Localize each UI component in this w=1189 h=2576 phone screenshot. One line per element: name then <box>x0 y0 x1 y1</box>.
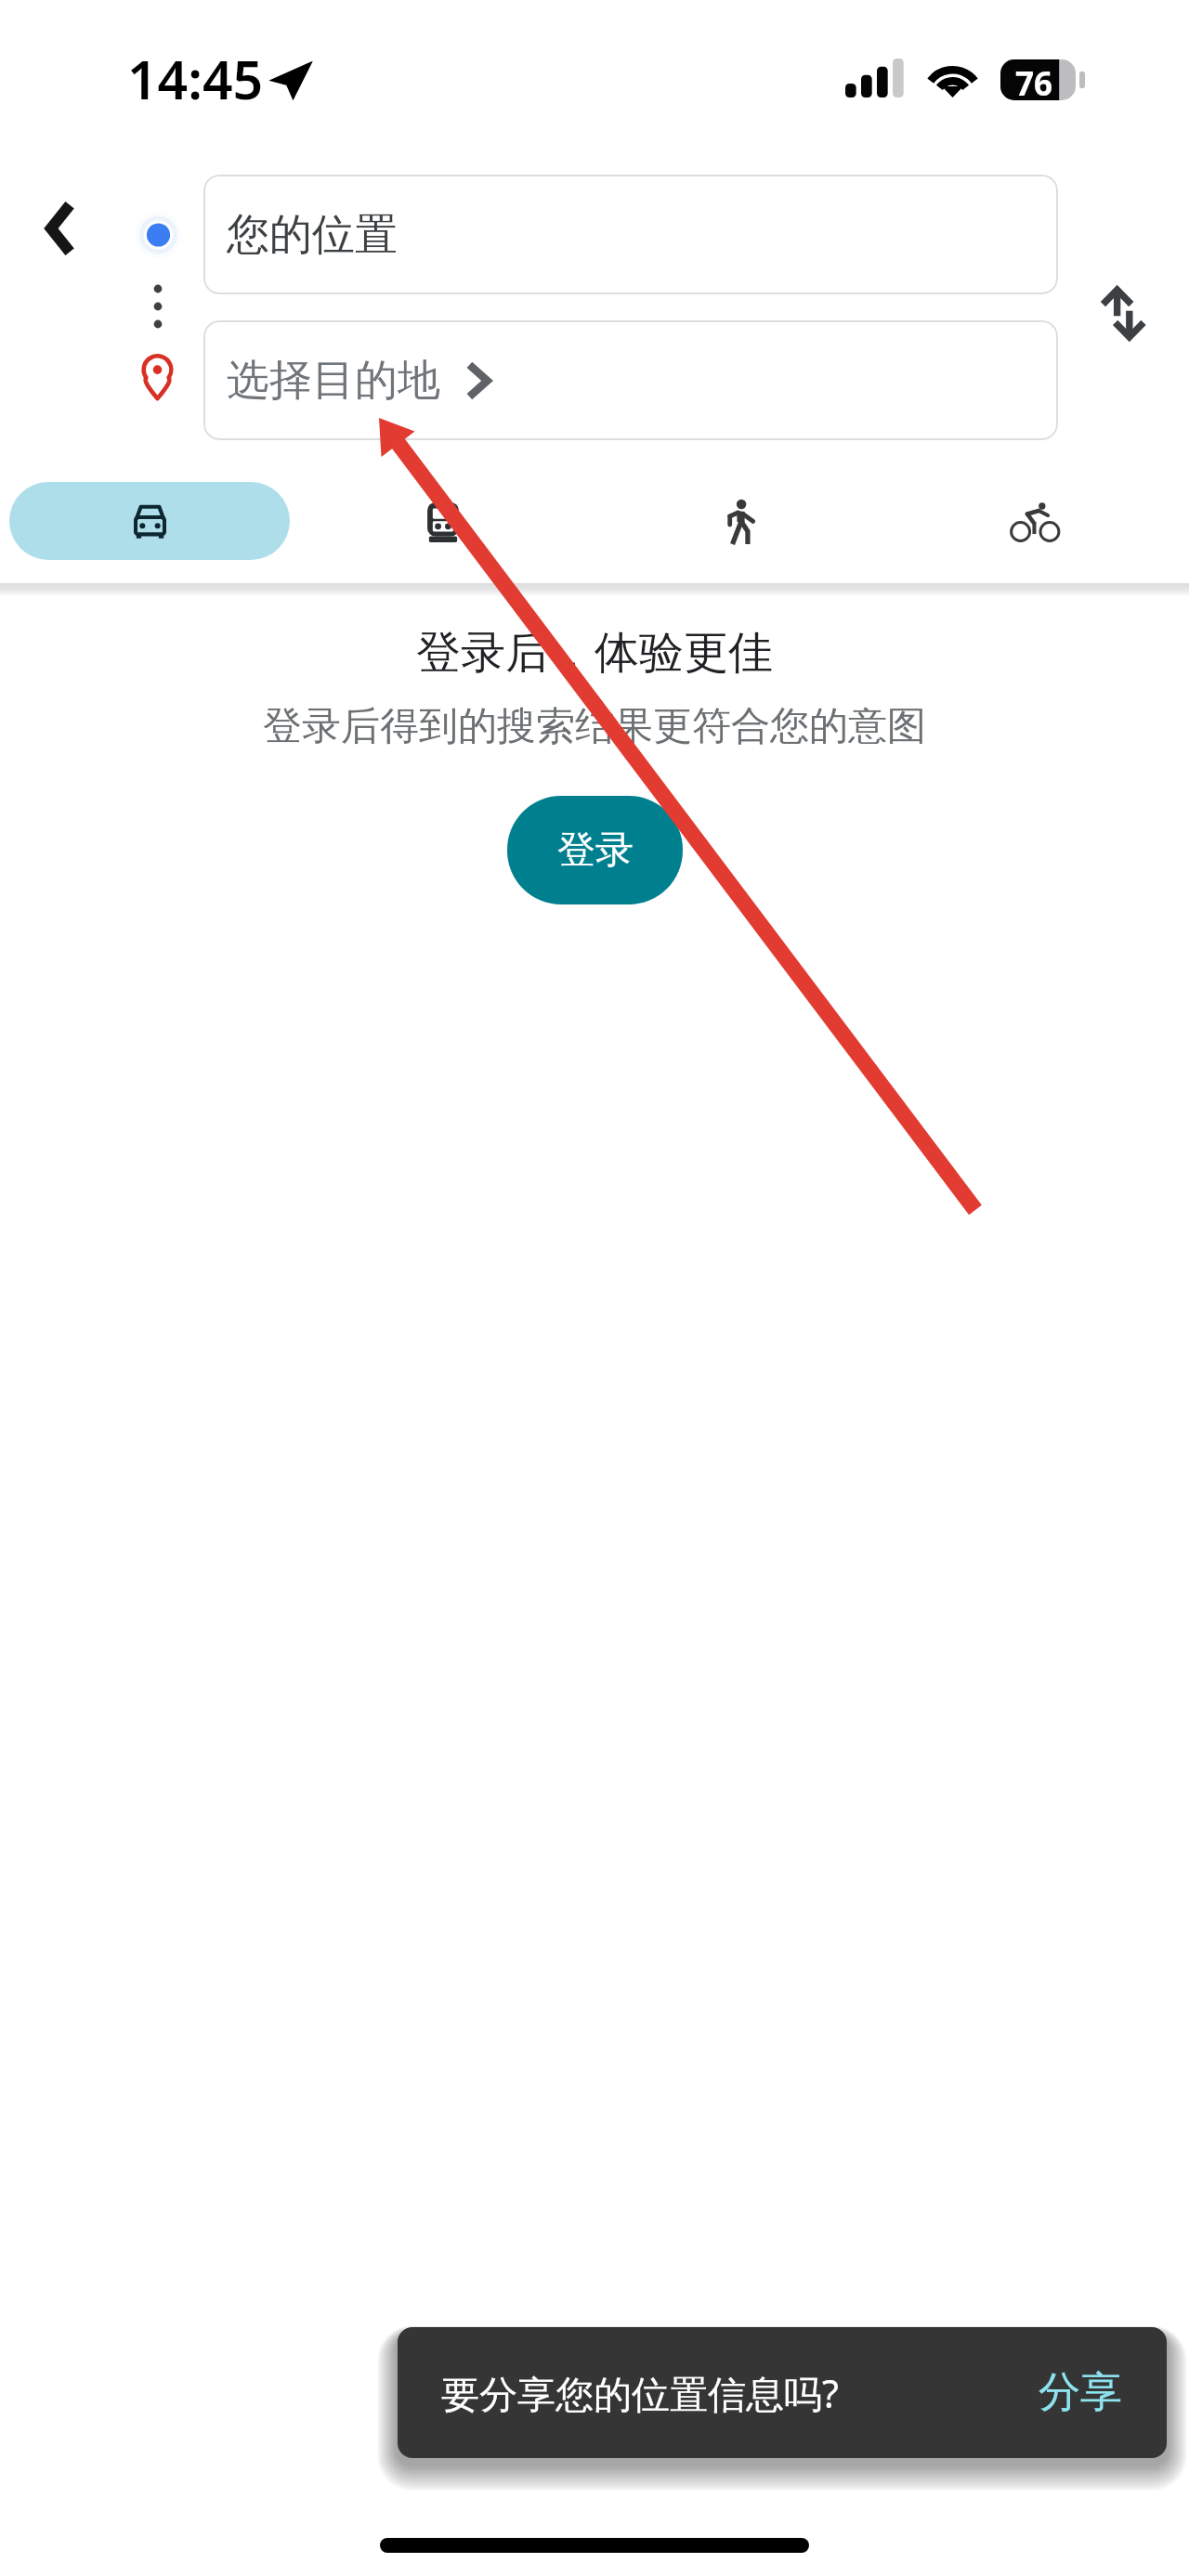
staticText: 您的位置 <box>227 208 398 262</box>
staticText: 分享 <box>1039 2366 1122 2419</box>
staticText: 要分享您的位置信息吗? <box>441 2367 839 2419</box>
button[interactable]: Back <box>14 184 103 273</box>
staticText: 登录 <box>557 826 634 875</box>
staticText: 登录后，体验更佳 <box>416 625 773 681</box>
button[interactable]: Swap start and destination <box>1078 267 1168 357</box>
button[interactable]: 要分享您的位置信息吗? <box>398 2327 1167 2458</box>
staticText: 登录后得到的搜索结果更符合您的意图 <box>263 702 926 751</box>
staticText: 76 <box>1015 61 1053 103</box>
staticText: 选择目的地 <box>227 354 440 408</box>
button[interactable]: Walking <box>666 475 815 568</box>
staticText: 14:45 <box>127 43 264 115</box>
button[interactable]: 选择目的地 <box>203 320 1058 440</box>
button[interactable]: Transit <box>369 475 517 568</box>
button[interactable]: 登录 <box>507 796 683 904</box>
button[interactable]: Cycling <box>960 475 1109 568</box>
button[interactable]: Driving <box>9 482 290 560</box>
button[interactable]: 您的位置 <box>203 175 1058 294</box>
